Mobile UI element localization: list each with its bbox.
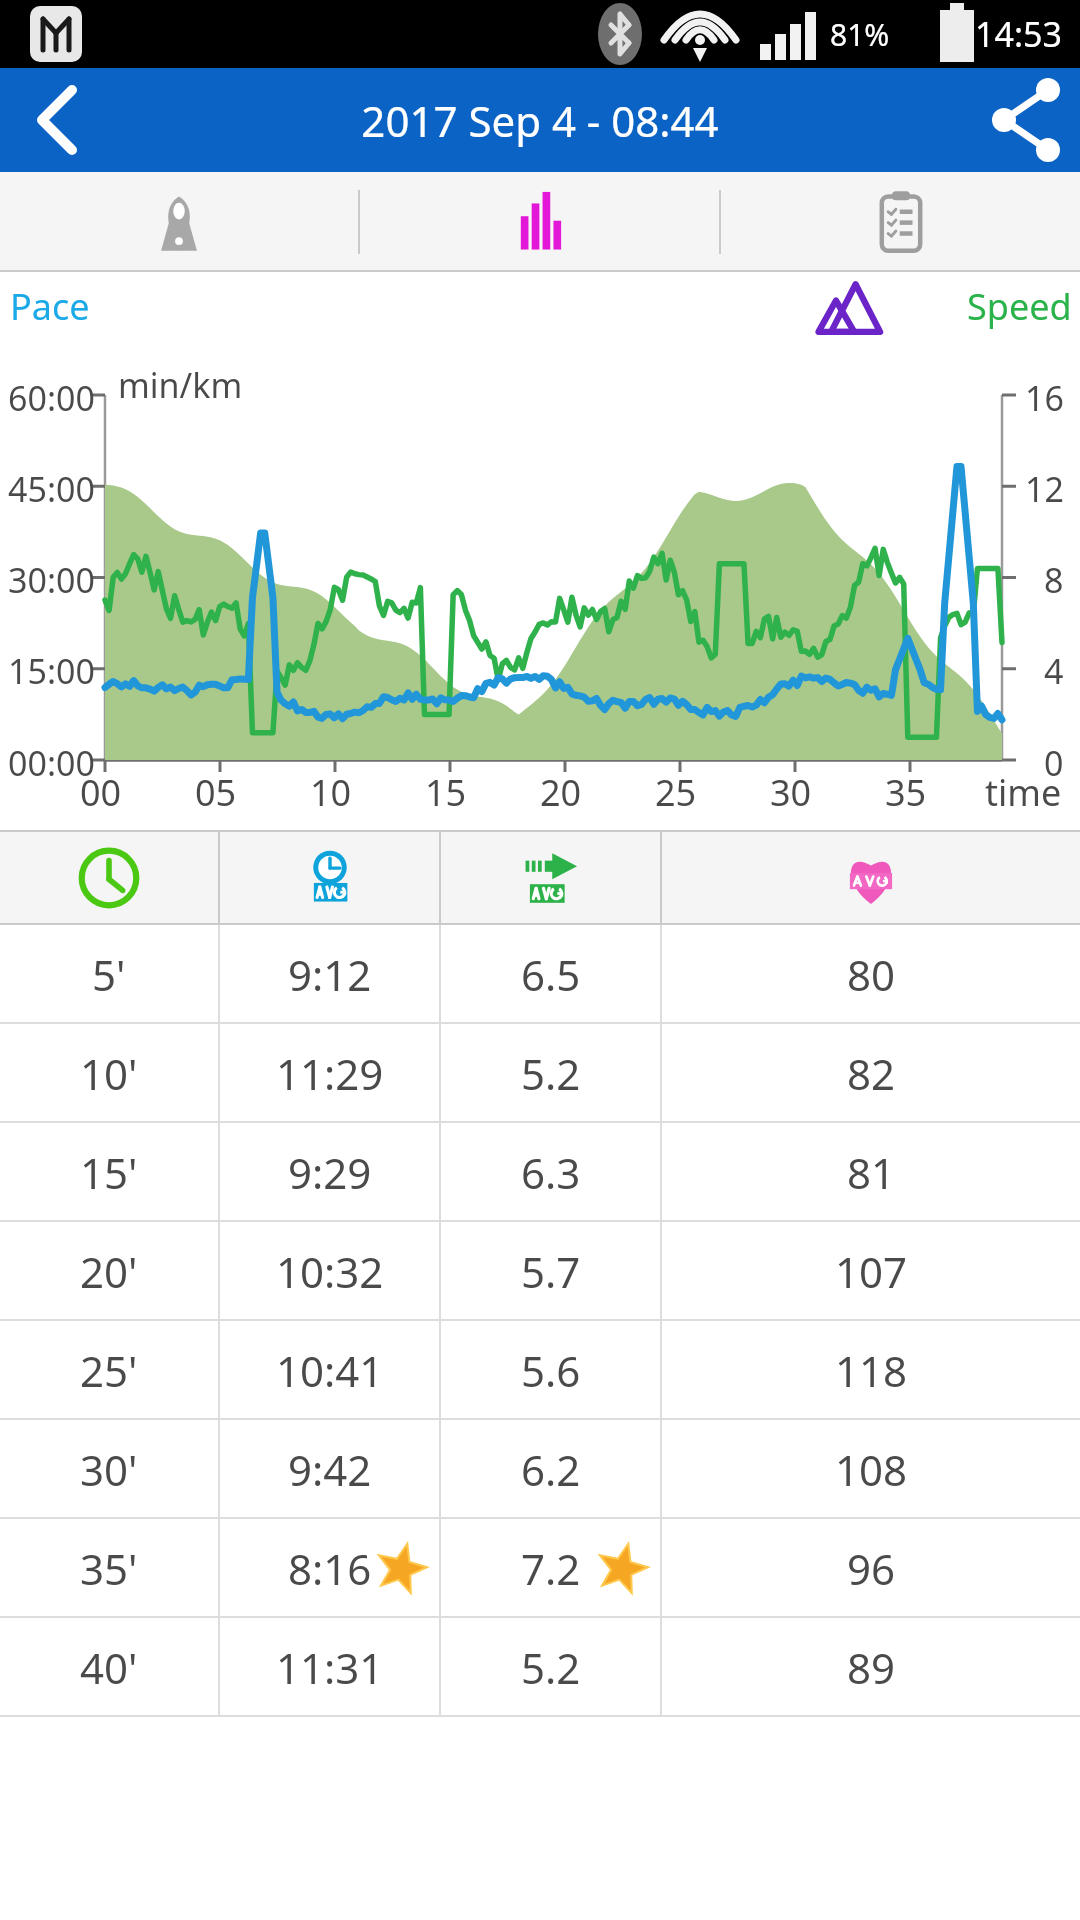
staticText: 6.2 [521,1441,581,1498]
staticText: 5.7 [521,1243,581,1300]
staticText: 107 [835,1243,908,1300]
staticText: 81% [830,14,890,55]
staticText: 00 [80,768,122,817]
button[interactable]: Map [0,172,358,272]
button[interactable]: Pace [10,282,90,331]
button[interactable]: 25' [0,1321,1080,1420]
staticText: 11:29 [276,1045,384,1102]
staticText: 4 [1044,648,1064,694]
staticText: 00:00 [8,740,95,786]
button[interactable]: Share [976,68,1080,172]
staticText: 10:41 [276,1342,384,1399]
staticText: 6.3 [521,1144,581,1201]
staticText: 12 [1025,466,1064,512]
staticText: 30' [80,1441,138,1498]
staticText: 35' [80,1540,138,1597]
staticText: 9:29 [288,1144,372,1201]
staticText: min/km [118,362,243,408]
staticText: 96 [847,1540,896,1597]
staticText: 10:32 [276,1243,384,1300]
staticText: 30 [770,768,812,817]
staticText: 15:00 [8,648,95,694]
button[interactable]: 30' [0,1420,1080,1519]
staticText: 05 [195,768,237,817]
staticText: 10 [310,768,352,817]
staticText: 9:12 [288,946,372,1003]
staticText: 5.2 [521,1045,581,1102]
staticText: 15' [80,1144,138,1201]
button[interactable]: 15' [0,1123,1080,1222]
staticText: 80 [847,946,896,1003]
staticText: 35 [885,768,927,817]
staticText: 6.5 [521,946,581,1003]
staticText: 15 [425,768,467,817]
staticText: 7.2 [521,1540,581,1597]
staticText: 45:00 [8,466,95,512]
button[interactable]: Charts [360,172,719,272]
button[interactable]: Details [721,172,1080,272]
button[interactable]: Average pace [220,830,439,925]
staticText: time [985,768,1062,817]
staticText: 20' [80,1243,138,1300]
button[interactable]: 10' [0,1024,1080,1123]
staticText: 20 [540,768,582,817]
staticText: 25 [655,768,697,817]
button[interactable]: Altitude [815,272,885,340]
button[interactable]: Speed [967,282,1072,331]
staticText: 5.2 [521,1639,581,1696]
button[interactable]: Average heart rate [662,830,1080,925]
staticText: 30:00 [8,557,95,603]
button[interactable]: Average speed [441,830,660,925]
staticText: 2017 Sep 4 - 08:44 [361,92,719,149]
staticText: 11:31 [276,1639,384,1696]
button[interactable]: 20' [0,1222,1080,1321]
staticText: 82 [847,1045,896,1102]
staticText: 9:42 [288,1441,372,1498]
staticText: 10' [80,1045,138,1102]
staticText: 16 [1025,375,1064,421]
staticText: 118 [835,1342,908,1399]
button[interactable]: Lap time [0,830,218,925]
staticText: 108 [835,1441,908,1498]
staticText: 81 [847,1144,896,1201]
staticText: 8:16 [288,1540,372,1597]
staticText: 25' [80,1342,138,1399]
staticText: 0 [1044,740,1064,786]
staticText: 5' [92,946,126,1003]
button[interactable]: 35' [0,1519,1080,1618]
staticText: 60:00 [8,375,95,421]
button[interactable]: 40' [0,1618,1080,1717]
staticText: 14:53 [975,11,1062,57]
staticText: 89 [847,1639,896,1696]
button[interactable]: 5' [0,925,1080,1024]
staticText: 5.6 [521,1342,581,1399]
staticText: 8 [1044,557,1064,603]
button[interactable]: Back [0,68,104,172]
staticText: 40' [80,1639,138,1696]
